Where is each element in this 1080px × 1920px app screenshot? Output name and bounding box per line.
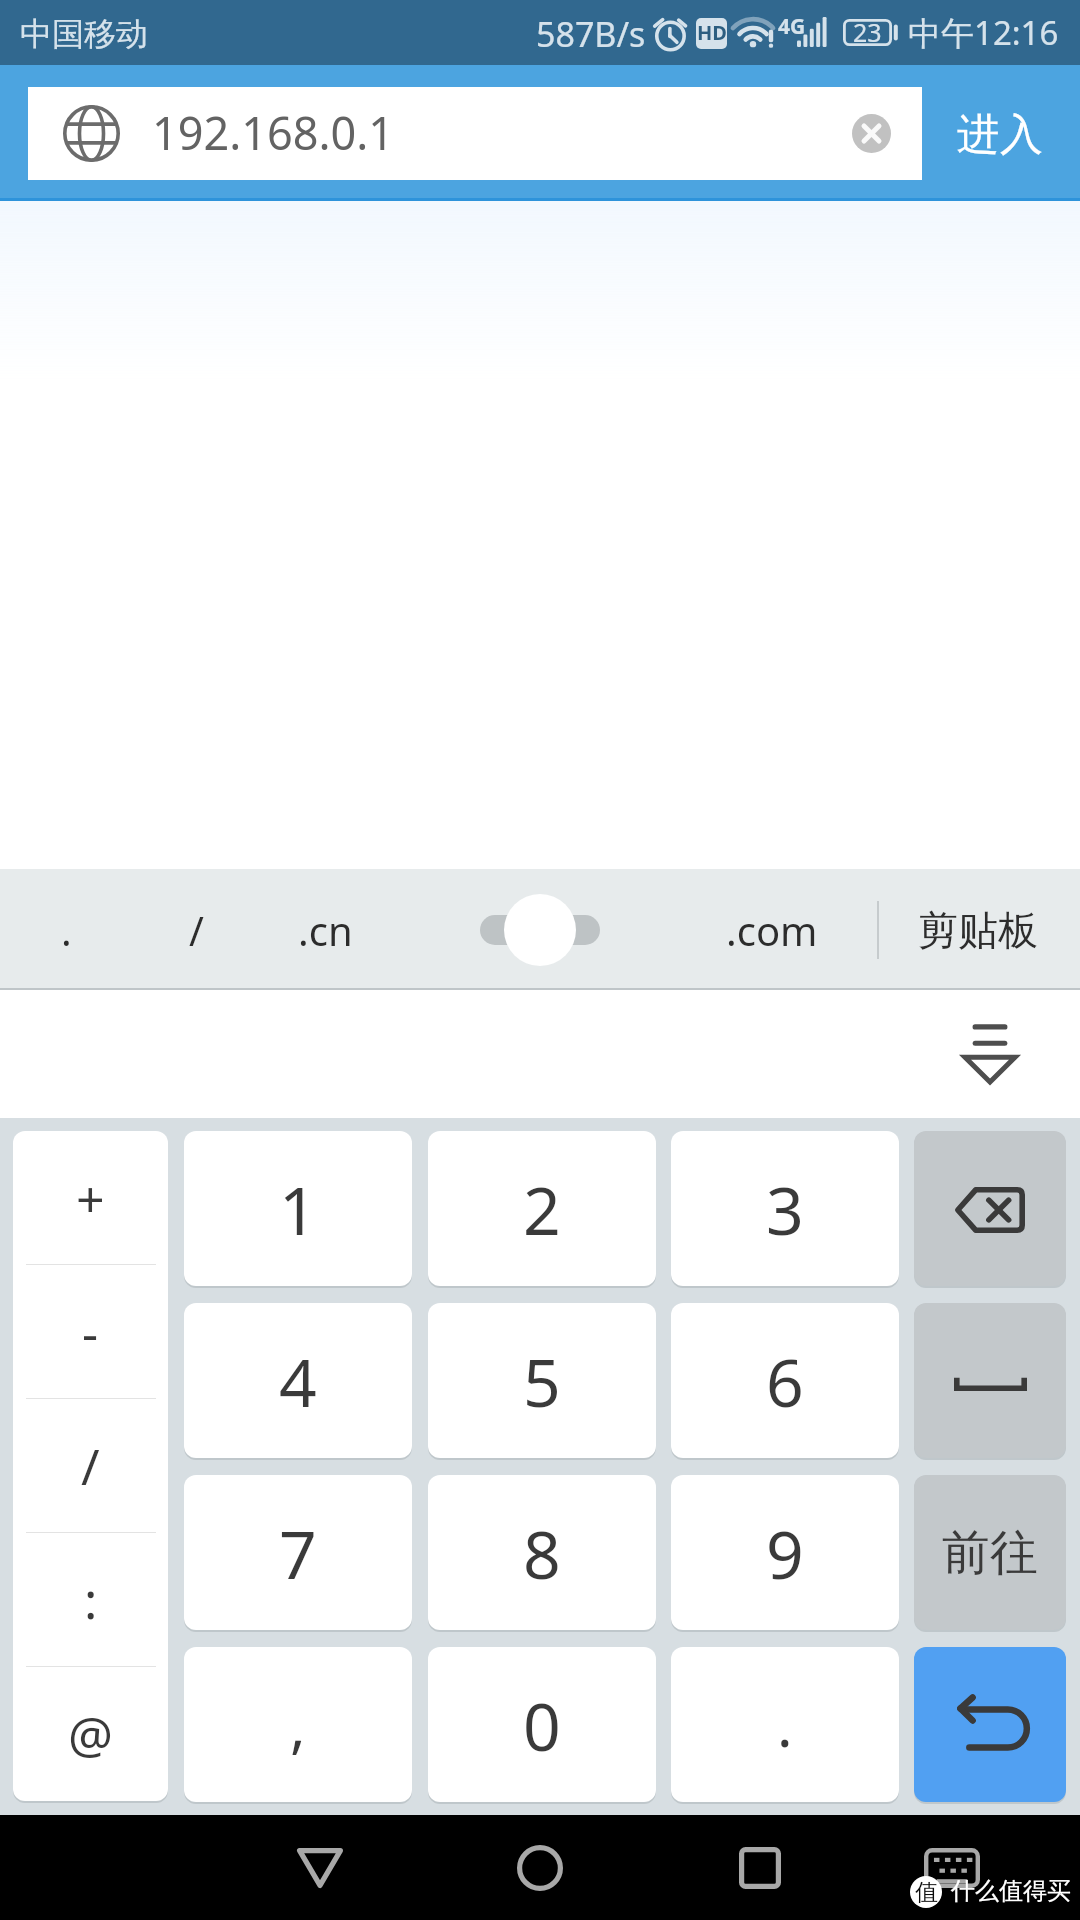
staticText: - bbox=[82, 1298, 99, 1366]
staticText: .cn bbox=[298, 903, 353, 957]
staticText: 剪贴板 bbox=[918, 905, 1038, 955]
staticText: 3 bbox=[766, 1164, 804, 1254]
button[interactable]: Recent apps bbox=[700, 1815, 820, 1920]
staticText: 9 bbox=[766, 1508, 804, 1598]
button[interactable]: 1 bbox=[184, 1131, 412, 1286]
button[interactable]: .cn bbox=[255, 869, 395, 990]
button[interactable]: 剪贴板 bbox=[908, 869, 1048, 990]
button[interactable]: 5 bbox=[428, 1303, 656, 1458]
button[interactable]: / bbox=[13, 1399, 168, 1533]
staticText: 0 bbox=[523, 1680, 561, 1770]
staticText: 192.168.0.1 bbox=[152, 102, 395, 163]
staticText: .com bbox=[726, 903, 818, 957]
staticText: 5 bbox=[523, 1336, 561, 1426]
button[interactable]: Hide keyboard bbox=[935, 1000, 1045, 1108]
button[interactable]: + bbox=[13, 1131, 168, 1265]
staticText: . bbox=[777, 1685, 793, 1764]
button[interactable]: . bbox=[0, 869, 136, 990]
staticText: 中午12:16 bbox=[908, 10, 1059, 55]
button[interactable]: Backspace bbox=[914, 1131, 1066, 1286]
staticText: : bbox=[84, 1566, 98, 1634]
button[interactable]: Clear text bbox=[852, 114, 891, 153]
button[interactable]: 2 bbox=[428, 1131, 656, 1286]
button[interactable]: @ bbox=[13, 1667, 168, 1801]
button[interactable]: Enter bbox=[914, 1647, 1066, 1802]
staticText: 7 bbox=[279, 1508, 317, 1598]
staticText: 6 bbox=[766, 1336, 804, 1426]
button[interactable]: 4 bbox=[184, 1303, 412, 1458]
staticText: 什么值得买 bbox=[951, 1876, 1071, 1906]
staticText: 23 bbox=[853, 15, 882, 42]
button[interactable]: Keyboard layout toggle bbox=[460, 875, 620, 985]
button[interactable]: 192.168.0.1 bbox=[28, 87, 922, 180]
staticText: 1 bbox=[279, 1164, 317, 1254]
button[interactable]: 8 bbox=[428, 1475, 656, 1630]
button[interactable]: - bbox=[13, 1265, 168, 1399]
button[interactable]: 9 bbox=[671, 1475, 899, 1630]
button[interactable]: 3 bbox=[671, 1131, 899, 1286]
button[interactable]: Switch input method bbox=[892, 1815, 1012, 1920]
button[interactable]: .com bbox=[702, 869, 842, 990]
button[interactable]: , bbox=[184, 1647, 412, 1802]
button[interactable]: Space bbox=[914, 1303, 1066, 1458]
staticText: 值 bbox=[915, 1878, 938, 1907]
staticText: 587B/s bbox=[536, 11, 646, 57]
staticText: 8 bbox=[523, 1508, 561, 1598]
staticText: 4G bbox=[778, 12, 806, 41]
staticText: 前往 bbox=[942, 1523, 1038, 1583]
staticText: + bbox=[76, 1164, 105, 1232]
button[interactable]: 进入 bbox=[922, 65, 1080, 200]
staticText: / bbox=[81, 1432, 100, 1500]
button[interactable]: 6 bbox=[671, 1303, 899, 1458]
staticText: @ bbox=[68, 1700, 113, 1768]
button[interactable]: 前往 bbox=[914, 1475, 1066, 1630]
staticText: HD bbox=[697, 19, 727, 46]
button[interactable]: Back bbox=[260, 1815, 380, 1920]
staticText: 进入 bbox=[957, 108, 1043, 162]
staticText: . bbox=[61, 903, 72, 957]
staticText: 4 bbox=[279, 1336, 317, 1426]
button[interactable]: 7 bbox=[184, 1475, 412, 1630]
staticText: 2 bbox=[523, 1164, 561, 1254]
staticText: / bbox=[189, 903, 204, 957]
button[interactable]: Home bbox=[480, 1815, 600, 1920]
button[interactable]: 0 bbox=[428, 1647, 656, 1802]
button[interactable]: : bbox=[13, 1533, 168, 1667]
staticText: 中国移动 bbox=[20, 14, 148, 54]
staticText: , bbox=[290, 1685, 306, 1764]
button[interactable]: . bbox=[671, 1647, 899, 1802]
button[interactable]: / bbox=[126, 869, 266, 990]
